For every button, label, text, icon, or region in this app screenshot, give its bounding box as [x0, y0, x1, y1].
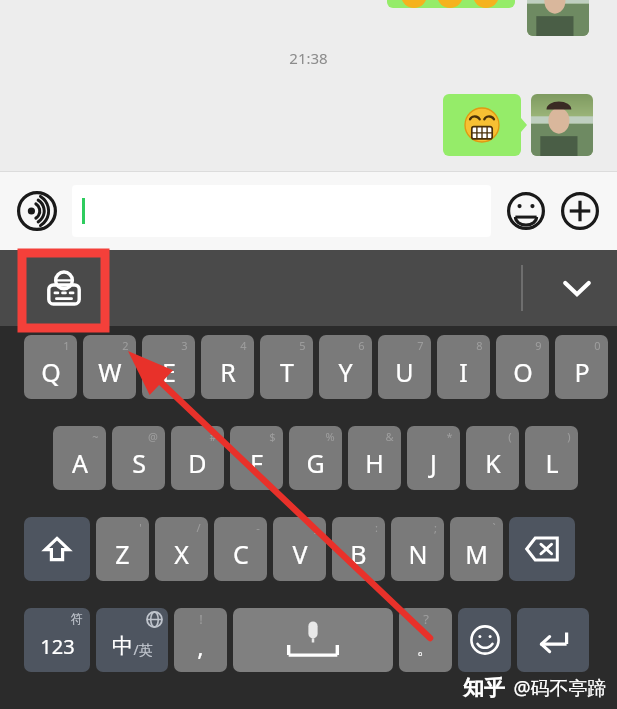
staticText: D [188, 446, 207, 480]
staticText: W [98, 355, 122, 389]
staticText: ) [567, 429, 571, 444]
staticText: R [220, 355, 236, 389]
staticText: ( [508, 429, 512, 444]
button[interactable]: 符 [24, 608, 90, 672]
staticText: 7 [417, 338, 424, 353]
staticText: - [256, 520, 260, 535]
staticText: * [446, 429, 453, 444]
staticText: ; [434, 520, 437, 535]
button[interactable]: 1 [24, 335, 77, 399]
staticText: T [280, 355, 294, 389]
button[interactable]: 6 [319, 335, 372, 399]
staticText: P [574, 355, 590, 389]
button[interactable]: % [289, 426, 342, 490]
button[interactable] [72, 185, 491, 237]
staticText: / [196, 520, 201, 535]
staticText: Y [338, 355, 353, 389]
button[interactable]: 8 [437, 335, 490, 399]
button[interactable]: Switch input method [27, 256, 100, 320]
staticText: V [292, 537, 308, 571]
staticText: C [233, 537, 249, 571]
staticText: 中 [112, 633, 133, 659]
staticText: # [209, 429, 217, 444]
button[interactable]: Shift [24, 517, 90, 581]
staticText: 0 [594, 338, 601, 353]
staticText: ? [423, 610, 429, 628]
button[interactable]: - [214, 517, 267, 581]
button[interactable]: Enter [517, 608, 589, 672]
button[interactable]: ` [450, 517, 503, 581]
staticText: A [72, 446, 88, 480]
staticText: 5 [299, 338, 306, 353]
staticText: G [306, 446, 325, 480]
staticText: J [430, 446, 437, 480]
staticText: K [485, 446, 501, 480]
button[interactable]: Emoji [458, 608, 511, 672]
button[interactable]: * [407, 426, 460, 490]
staticText: U [395, 355, 414, 389]
staticText: 符 [71, 611, 83, 626]
staticText: % [325, 429, 335, 444]
staticText: ! [199, 610, 203, 628]
staticText: 21:38 [289, 48, 328, 68]
button[interactable]: Hide keyboard [545, 256, 609, 320]
button[interactable]: Backspace [509, 517, 575, 581]
button[interactable]: : [332, 517, 385, 581]
button[interactable]: 7 [378, 335, 431, 399]
button[interactable]: @ [112, 426, 165, 490]
button[interactable]: 9 [496, 335, 549, 399]
button[interactable]: ; [391, 517, 444, 581]
staticText: @ [148, 429, 158, 444]
staticText: , [197, 630, 204, 663]
button[interactable]: 中 [96, 608, 168, 672]
staticText: B [350, 537, 367, 571]
staticText: 3 [181, 338, 188, 353]
staticText: O [513, 355, 533, 389]
staticText: : [375, 520, 378, 535]
staticText: M [465, 537, 488, 571]
staticText: ` [492, 520, 496, 535]
button[interactable]: & [348, 426, 401, 490]
button[interactable]: Space [233, 608, 393, 672]
button[interactable]: $ [230, 426, 283, 490]
staticText: 9 [535, 338, 542, 353]
button[interactable]: ! [174, 608, 227, 672]
button[interactable]: 4 [201, 335, 254, 399]
staticText: L [545, 446, 559, 480]
staticText: 2 [122, 338, 129, 353]
button[interactable]: ) [525, 426, 578, 490]
staticText: Z [115, 537, 130, 571]
staticText: ' [139, 520, 142, 535]
staticText: S [132, 446, 146, 480]
button[interactable]: 2 [83, 335, 136, 399]
staticText: X [174, 537, 189, 571]
staticText: F [250, 446, 263, 480]
staticText: 8 [476, 338, 483, 353]
staticText: 6 [358, 338, 365, 353]
staticText: $ [269, 429, 276, 444]
staticText: & [385, 429, 394, 444]
button[interactable]: Voice input [14, 188, 60, 234]
staticText: H [365, 446, 384, 480]
staticText: ~ [92, 429, 99, 444]
button[interactable]: 0 [555, 335, 608, 399]
staticText: I [459, 355, 468, 389]
staticText: /英 [133, 640, 153, 659]
button[interactable]: # [171, 426, 224, 490]
button[interactable]: More [557, 188, 603, 234]
button[interactable]: ? [399, 608, 452, 672]
button[interactable]: 3 [142, 335, 195, 399]
staticText: 123 [40, 633, 75, 660]
button[interactable]: ~ [53, 426, 106, 490]
staticText: N [408, 537, 428, 571]
staticText: E [162, 355, 176, 389]
button[interactable]: ( [466, 426, 519, 490]
button[interactable]: Emoji [503, 188, 549, 234]
button[interactable]: 5 [260, 335, 313, 399]
button[interactable]: _ [273, 517, 326, 581]
button[interactable]: / [155, 517, 208, 581]
staticText: 。 [417, 638, 434, 659]
button[interactable]: ' [96, 517, 149, 581]
staticText: Q [41, 355, 61, 389]
staticText: 知乎 [463, 675, 505, 701]
